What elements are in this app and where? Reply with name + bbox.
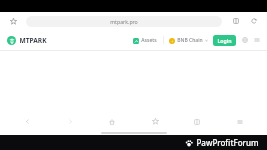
button[interactable]: Home [97, 113, 127, 130]
button[interactable]: Back [12, 113, 42, 130]
button[interactable]: Bookmark [6, 14, 20, 28]
button[interactable]: Bookmarks [140, 113, 170, 130]
button[interactable]: Login [213, 35, 236, 46]
button[interactable]: BNB Chain [168, 35, 209, 46]
staticText: BNB Chain [177, 37, 203, 44]
button[interactable]: Assets [131, 35, 159, 46]
button[interactable]: Tabs [182, 113, 212, 130]
button[interactable]: Language [240, 35, 250, 45]
staticText: PawProfitForum [196, 137, 259, 148]
button[interactable]: Reload [247, 14, 261, 28]
button[interactable]: mtpark.pro [26, 16, 222, 27]
button[interactable]: Tabs [229, 14, 243, 28]
button[interactable]: Menu [225, 113, 255, 130]
button[interactable]: Menu [252, 35, 262, 45]
staticText: Login [217, 37, 232, 44]
staticText: mtpark.pro [110, 18, 138, 25]
staticText: Assets [141, 37, 157, 44]
button[interactable]: MTPARK [7, 36, 47, 45]
staticText: MTPARK [19, 36, 47, 45]
